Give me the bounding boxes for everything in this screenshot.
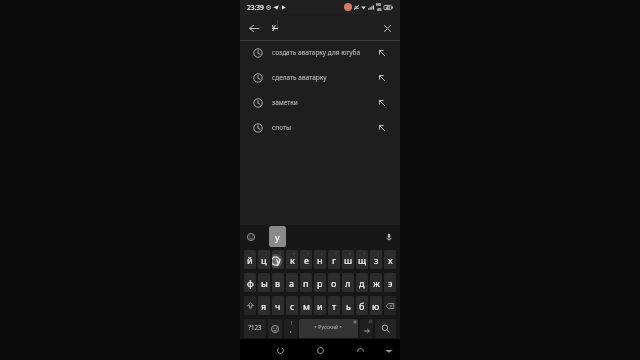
staticText: создать аватарку для ютуба bbox=[272, 48, 363, 57]
staticText: е bbox=[304, 254, 309, 266]
button[interactable]: Clear search bbox=[377, 18, 397, 38]
staticText: ы bbox=[261, 277, 268, 289]
button[interactable]: · bbox=[328, 273, 340, 292]
button[interactable]: · bbox=[314, 273, 326, 292]
button[interactable]: · bbox=[244, 273, 256, 292]
staticText: т bbox=[332, 300, 337, 312]
staticText: у bbox=[275, 231, 280, 243]
button[interactable]: · bbox=[342, 273, 354, 292]
button[interactable]: Comma bbox=[284, 319, 297, 338]
staticText: щ bbox=[358, 254, 367, 266]
staticText: ю bbox=[372, 300, 380, 312]
button[interactable]: 9 bbox=[356, 250, 368, 269]
staticText: ч bbox=[275, 300, 281, 312]
button[interactable]: заметки bbox=[240, 90, 400, 115]
button[interactable]: 1 bbox=[244, 250, 256, 269]
staticText: м bbox=[303, 300, 310, 312]
button[interactable]: · bbox=[384, 250, 396, 269]
staticText: х bbox=[388, 254, 393, 266]
staticText: ж bbox=[373, 277, 380, 289]
button[interactable]: 3 bbox=[272, 250, 284, 269]
staticText: б bbox=[359, 300, 365, 312]
button[interactable]: 2 bbox=[258, 250, 270, 269]
button[interactable]: Voice input bbox=[383, 231, 395, 243]
button[interactable]: сделать аватарку bbox=[240, 65, 400, 90]
button[interactable]: · bbox=[272, 273, 284, 292]
button[interactable]: · bbox=[328, 296, 340, 315]
button[interactable]: Emoji bbox=[245, 231, 257, 243]
staticText: ш bbox=[344, 254, 353, 266]
button[interactable]: 4 bbox=[286, 250, 298, 269]
button[interactable]: · bbox=[300, 273, 312, 292]
staticText: н bbox=[317, 254, 323, 266]
button[interactable]: ?123 bbox=[244, 319, 266, 338]
button[interactable]: у bbox=[269, 226, 286, 247]
staticText: Русский bbox=[317, 323, 340, 330]
button[interactable]: Period bbox=[360, 319, 373, 338]
button[interactable]: · bbox=[258, 273, 270, 292]
staticText: к bbox=[290, 254, 295, 266]
button[interactable]: · bbox=[370, 273, 382, 292]
button[interactable]: · bbox=[286, 296, 298, 315]
staticText: з bbox=[374, 254, 379, 266]
staticText: ?123 bbox=[248, 323, 262, 331]
button[interactable]: · bbox=[356, 296, 368, 315]
button[interactable]: Emoji bbox=[268, 319, 282, 338]
staticText: л bbox=[345, 277, 351, 289]
staticText: э bbox=[388, 277, 393, 289]
staticText: 6 bbox=[321, 251, 324, 256]
staticText: ▸ bbox=[340, 324, 343, 329]
button[interactable]: Search bbox=[375, 319, 396, 338]
staticText: ц bbox=[261, 254, 267, 266]
button[interactable]: · bbox=[370, 296, 382, 315]
button[interactable]: Back bbox=[244, 18, 264, 38]
button[interactable]: · bbox=[272, 296, 284, 315]
staticText: споты bbox=[272, 123, 363, 132]
staticText: у bbox=[272, 22, 276, 32]
button[interactable]: 5 bbox=[300, 250, 312, 269]
button[interactable]: 8 bbox=[342, 250, 354, 269]
button[interactable]: Backspace bbox=[384, 296, 396, 315]
button[interactable]: ◂ bbox=[299, 319, 358, 338]
button[interactable]: Back bbox=[274, 344, 286, 356]
button[interactable]: · bbox=[300, 296, 312, 315]
button[interactable]: · bbox=[258, 296, 270, 315]
staticText: д bbox=[359, 277, 365, 289]
button[interactable]: 0 bbox=[370, 250, 382, 269]
staticText: 0 bbox=[377, 251, 380, 256]
staticText: 2 bbox=[265, 251, 268, 256]
button[interactable]: Recent apps bbox=[354, 344, 366, 356]
staticText: ! bbox=[291, 320, 293, 327]
button[interactable]: · bbox=[342, 296, 354, 315]
staticText: ь bbox=[346, 300, 351, 312]
staticText: 43 bbox=[386, 5, 390, 10]
button[interactable]: Home bbox=[314, 344, 326, 356]
button[interactable]: 6 bbox=[314, 250, 326, 269]
button[interactable]: · bbox=[356, 273, 368, 292]
button[interactable]: · bbox=[384, 273, 396, 292]
button[interactable]: · bbox=[314, 296, 326, 315]
button[interactable]: 7 bbox=[328, 250, 340, 269]
staticText: 4 bbox=[293, 251, 296, 256]
staticText: г bbox=[332, 254, 336, 266]
staticText: ф bbox=[247, 277, 254, 289]
button[interactable]: создать аватарку для ютуба bbox=[240, 40, 400, 65]
staticText: 3 bbox=[279, 251, 282, 256]
staticText: о bbox=[331, 277, 337, 289]
button[interactable]: споты bbox=[240, 115, 400, 140]
button[interactable]: · bbox=[286, 273, 298, 292]
button[interactable]: Hide keyboard bbox=[383, 344, 395, 356]
button[interactable]: Shift bbox=[244, 296, 256, 315]
